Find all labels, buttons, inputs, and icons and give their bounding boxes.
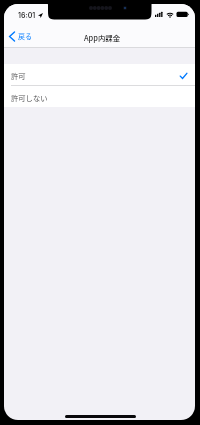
- button[interactable]: 許可しない: [4, 86, 195, 107]
- staticText: 16:01: [18, 11, 36, 19]
- staticText: 戻る: [18, 31, 32, 41]
- button[interactable]: 戻る: [4, 27, 38, 45]
- other: Selected: [180, 73, 187, 79]
- staticText: 許可しない: [11, 93, 48, 104]
- staticText: 許可: [11, 71, 26, 82]
- staticText: App内課金: [84, 32, 121, 43]
- button[interactable]: 許可: [4, 64, 195, 85]
